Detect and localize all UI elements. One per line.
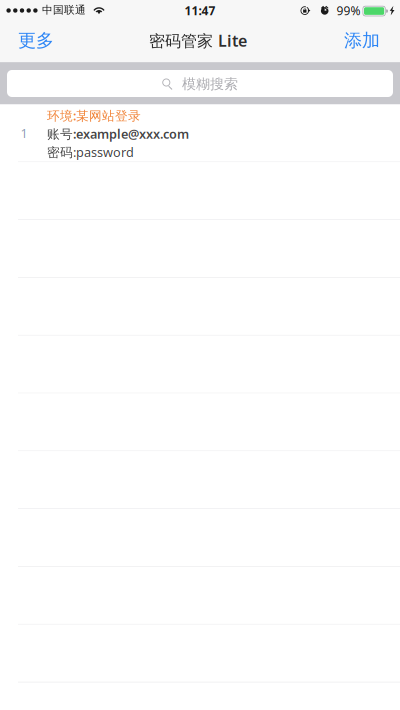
- staticText: 环境:某网站登录: [47, 107, 141, 124]
- button[interactable]: 1: [0, 104, 400, 162]
- button[interactable]: 更多: [0, 22, 62, 62]
- staticText: 99%: [336, 2, 360, 19]
- staticText: 1: [20, 124, 27, 142]
- staticText: 添加: [344, 29, 380, 52]
- staticText: 密码管家 Lite: [149, 30, 247, 51]
- staticText: 密码:password: [47, 143, 134, 161]
- staticText: 更多: [18, 29, 54, 52]
- staticText: 中国联通: [42, 3, 86, 17]
- button[interactable]: 添加: [336, 22, 400, 62]
- staticText: 11:47: [184, 2, 215, 19]
- button[interactable]: 模糊搜索: [7, 70, 393, 97]
- staticText: 模糊搜索: [182, 75, 238, 93]
- staticText: 账号:example@xxx.com: [47, 125, 189, 142]
